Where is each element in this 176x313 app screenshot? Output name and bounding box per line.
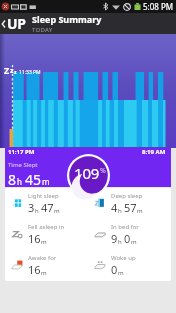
button[interactable]: Woke up (88, 250, 171, 281)
staticText: z (14, 69, 17, 76)
staticText: TODAY (32, 26, 53, 34)
staticText: Z (4, 64, 10, 76)
staticText: 11:17 PM (8, 148, 35, 156)
staticText: 8:19 AM (142, 148, 166, 156)
staticText: 8 (8, 170, 17, 187)
staticText: Time Slept (8, 161, 38, 169)
staticText: m (131, 238, 137, 246)
staticText: h (118, 207, 122, 215)
staticText: m (137, 207, 143, 215)
staticText: 16 (28, 231, 41, 246)
staticText: 47 (41, 200, 54, 215)
staticText: 57 (124, 200, 137, 215)
staticText: 109 (74, 163, 100, 183)
staticText: 11:33 PM (19, 69, 41, 76)
staticText: m (118, 269, 124, 277)
staticText: 0 (111, 262, 118, 277)
staticText: Fell asleep in (28, 223, 65, 231)
staticText: 16 (28, 262, 41, 277)
staticText: % (100, 166, 106, 176)
staticText: Deep sleep (111, 192, 143, 200)
staticText: Woke up (111, 254, 136, 262)
staticText: In bed for (111, 223, 139, 231)
staticText: m (41, 238, 47, 246)
button[interactable]: Back (0, 14, 28, 33)
button[interactable]: Awake for (5, 250, 88, 281)
staticText: z (10, 66, 14, 76)
staticText: 5:08 PM (143, 1, 174, 12)
staticText: m (54, 207, 60, 215)
staticText: Light sleep (28, 192, 59, 200)
staticText: 3 (28, 200, 35, 215)
staticText: m (41, 269, 47, 277)
button[interactable]: Fell asleep in (5, 219, 88, 250)
staticText: 9 (111, 231, 118, 246)
staticText: Awake for (28, 254, 57, 262)
staticText: 0 (124, 231, 131, 246)
staticText: m (42, 176, 50, 187)
staticText: 45 (25, 170, 42, 187)
staticText: h (17, 176, 22, 187)
button[interactable]: Light sleep (5, 188, 88, 219)
staticText: Sleep Summary (32, 13, 102, 25)
staticText: h (118, 238, 122, 246)
staticText: UP (7, 14, 26, 33)
button[interactable]: In bed for (88, 219, 171, 250)
staticText: h (35, 207, 39, 215)
button[interactable]: Deep sleep (88, 188, 171, 219)
staticText: 4 (111, 200, 118, 215)
